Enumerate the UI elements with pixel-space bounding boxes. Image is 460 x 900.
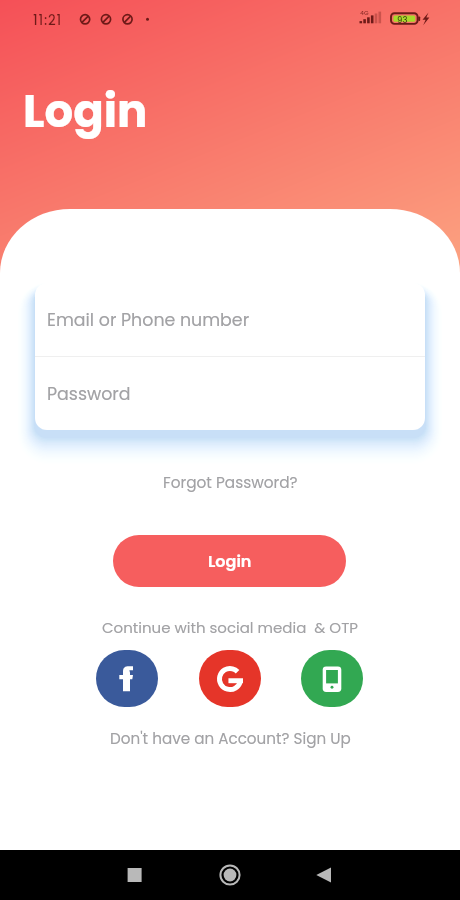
button[interactable]: Forgot Password?	[155, 467, 306, 498]
staticText: 4G	[360, 9, 369, 17]
staticText: Don't have an Account? Sign Up	[110, 728, 351, 749]
staticText: Email or Phone number	[47, 308, 250, 332]
staticText: Login	[23, 80, 148, 143]
button[interactable]: Email or Phone number	[35, 283, 425, 356]
staticText: 93	[397, 14, 408, 26]
button[interactable]: Sign in with Facebook	[96, 650, 158, 707]
button[interactable]: Login	[113, 535, 346, 587]
staticText: Continue with social media & OTP	[102, 617, 358, 638]
staticText: Login	[208, 550, 252, 572]
staticText: Forgot Password?	[163, 472, 298, 493]
staticText: 11:21	[33, 11, 62, 30]
staticText: Password	[47, 382, 131, 406]
button[interactable]: Sign in with Google	[199, 650, 261, 707]
button[interactable]: Password	[35, 357, 425, 430]
button[interactable]: Don't have an Account? Sign Up	[102, 723, 359, 754]
button[interactable]: Sign in with OTP	[301, 650, 363, 707]
